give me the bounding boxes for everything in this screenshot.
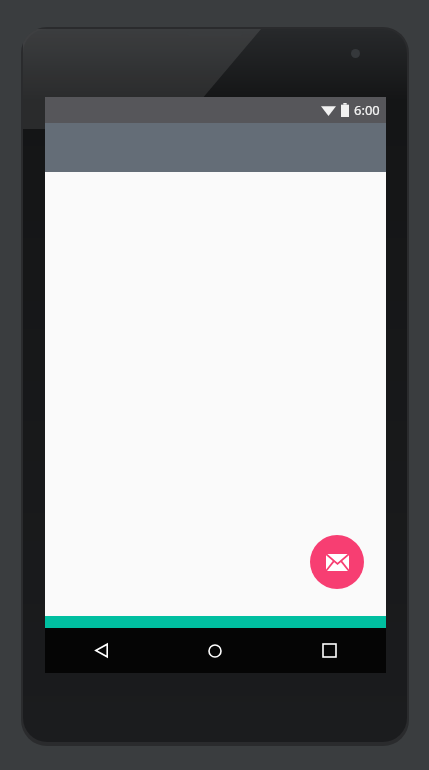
staticText: 6:00 [354,101,380,119]
button[interactable]: Recent apps [272,628,386,673]
button[interactable]: Back [45,628,158,673]
button[interactable]: Compose message [310,535,364,589]
button[interactable]: Home [158,628,272,673]
